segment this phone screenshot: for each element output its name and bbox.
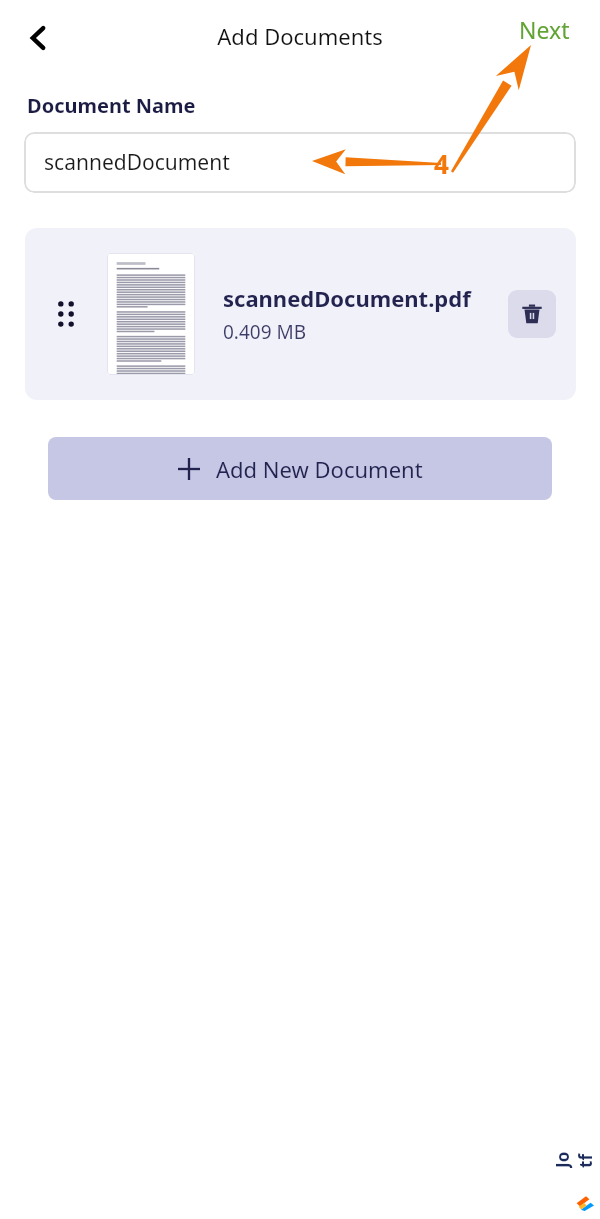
staticText: scannedDocument.pdf [223,283,471,313]
button[interactable]: Reorder [25,228,576,400]
button[interactable]: Reorder [25,228,107,400]
staticText: Jotform [551,1146,600,1168]
staticText: Document Name [27,92,196,119]
staticText: Next [519,14,570,45]
button[interactable]: Delete [508,290,556,338]
staticText: 0.409 MB [223,319,307,345]
button[interactable]: scannedDocument [24,132,576,193]
button[interactable]: Add New Document [48,437,552,500]
button[interactable]: Back [14,14,62,62]
button[interactable]: Next [513,10,576,49]
staticText: 4 [434,146,449,181]
staticText: scannedDocument [44,148,230,177]
staticText: Add New Document [216,454,423,484]
staticText: Add Documents [0,21,600,51]
